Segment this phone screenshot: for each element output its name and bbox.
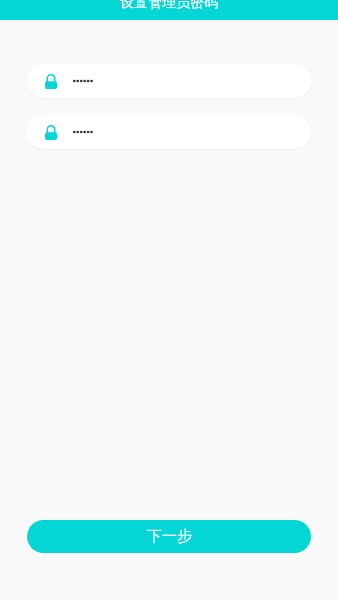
button[interactable]: 管理员密码 <box>26 64 312 98</box>
button[interactable]: 下一步 <box>27 520 311 553</box>
staticText: 设置管理员密码 <box>120 0 218 12</box>
button[interactable]: 确认管理员密码 <box>26 115 312 149</box>
staticText: 下一步 <box>147 527 192 546</box>
